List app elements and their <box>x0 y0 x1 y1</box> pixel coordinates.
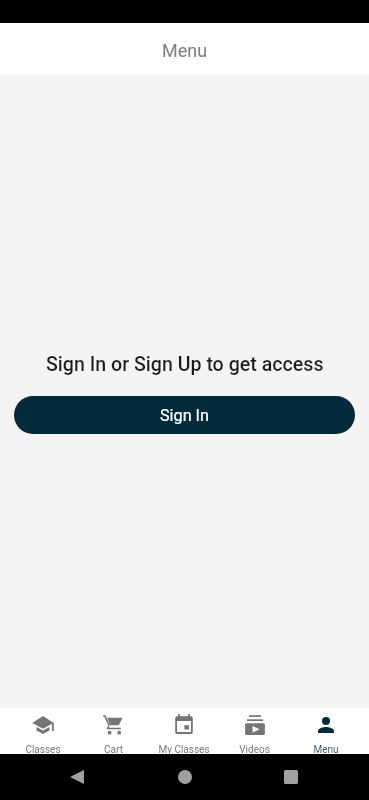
staticText: Sign In or Sign Up to get access <box>46 353 324 376</box>
button[interactable]: Cart <box>78 708 148 754</box>
staticText: Cart <box>104 744 123 754</box>
button[interactable]: Classes <box>8 708 78 754</box>
staticText: My Classes <box>158 744 210 754</box>
button[interactable]: Videos <box>219 708 290 754</box>
staticText: Sign In <box>160 406 209 425</box>
button[interactable]: Back <box>70 770 84 784</box>
staticText: Menu <box>313 744 339 754</box>
staticText: Videos <box>239 744 270 754</box>
button[interactable]: Menu <box>290 708 361 754</box>
button[interactable]: Sign In <box>14 396 355 434</box>
staticText: Menu <box>162 40 208 61</box>
button[interactable]: Recent apps <box>284 770 298 784</box>
button[interactable]: My Classes <box>148 708 219 754</box>
staticText: Classes <box>25 744 61 754</box>
button[interactable]: Home <box>178 770 192 784</box>
